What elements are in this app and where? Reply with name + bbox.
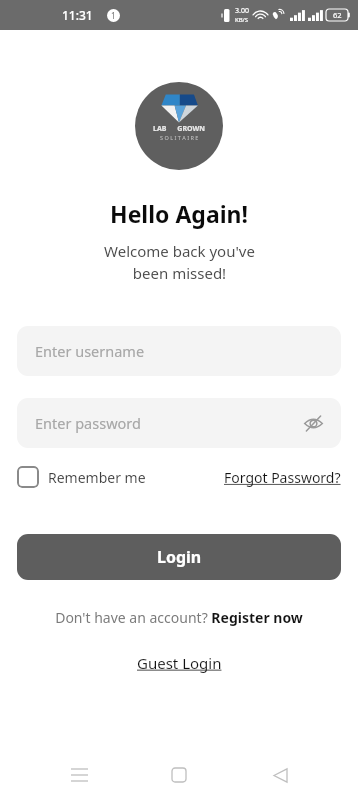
button[interactable]: Enter username bbox=[17, 326, 341, 376]
staticText: Remember me bbox=[48, 468, 146, 487]
button[interactable]: Login bbox=[17, 534, 341, 580]
staticText: Guest Login bbox=[137, 653, 222, 673]
button[interactable]: Back bbox=[258, 753, 302, 797]
staticText: KB/S bbox=[235, 16, 249, 24]
button[interactable]: Don't have an account? Register now bbox=[55, 608, 303, 627]
button[interactable]: Forgot Password? bbox=[224, 468, 341, 487]
button[interactable]: Guest Login bbox=[137, 653, 222, 673]
staticText: Enter password bbox=[35, 413, 141, 433]
staticText: Forgot Password? bbox=[224, 468, 341, 487]
staticText: Enter username bbox=[35, 341, 145, 361]
button[interactable]: Home bbox=[157, 753, 201, 797]
staticText: Login bbox=[157, 546, 202, 568]
staticText: 3.00 bbox=[235, 6, 249, 16]
staticText: Welcome back you've been missed! bbox=[104, 241, 255, 284]
staticText: S O L I T A I R E bbox=[160, 134, 199, 141]
button[interactable]: Show password bbox=[299, 409, 327, 437]
staticText: Don't have an account? Register now bbox=[55, 608, 303, 627]
staticText: 62 bbox=[333, 10, 342, 20]
staticText: 11:31 bbox=[62, 7, 93, 23]
button[interactable]: Enter password bbox=[17, 398, 341, 448]
staticText: LAB GROWN bbox=[153, 124, 205, 134]
staticText: Hello Again! bbox=[110, 198, 248, 229]
button[interactable]: Remember me bbox=[17, 466, 146, 488]
staticText: 1 bbox=[111, 10, 116, 21]
button[interactable]: Recent apps bbox=[57, 753, 101, 797]
